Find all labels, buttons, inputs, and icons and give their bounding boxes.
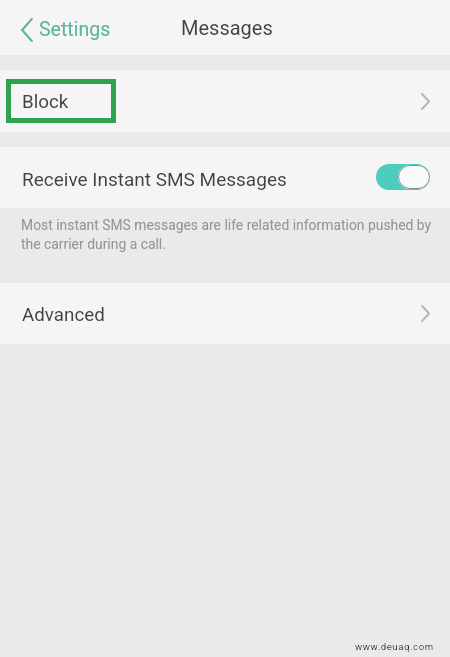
staticText: www.deuaq.com: [355, 641, 434, 652]
button[interactable]: Receive Instant SMS Messages toggle: [376, 164, 430, 190]
staticText: Most instant SMS messages are life relat…: [21, 217, 432, 252]
staticText: Messages: [181, 16, 273, 39]
staticText: Settings: [39, 18, 111, 41]
staticText: Block: [22, 91, 69, 113]
button[interactable]: Back to Settings: [0, 8, 125, 48]
button[interactable]: Receive Instant SMS Messages: [0, 147, 450, 208]
button[interactable]: Advanced: [0, 283, 450, 344]
staticText: Receive Instant SMS Messages: [22, 168, 287, 190]
button[interactable]: Block: [0, 70, 450, 132]
staticText: Advanced: [22, 304, 105, 326]
